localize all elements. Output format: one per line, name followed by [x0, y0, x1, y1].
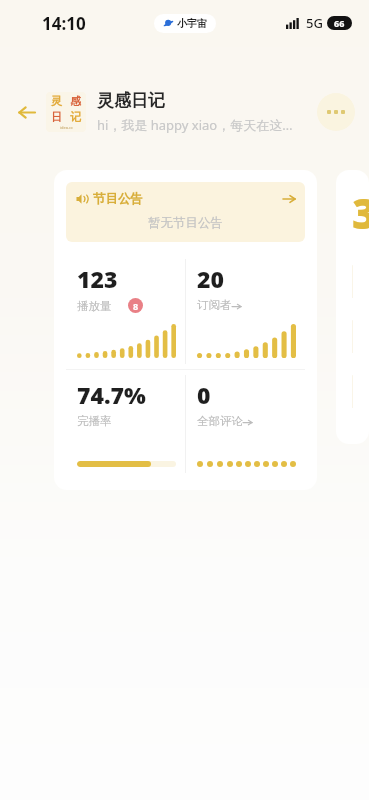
staticText: 节目公告: [93, 191, 143, 207]
staticText: 感: [70, 94, 81, 108]
staticText: 全部评论: [197, 414, 243, 428]
button[interactable]: 123: [66, 254, 185, 369]
staticText: 灵感日记: [97, 90, 165, 111]
staticText: 小宇宙: [177, 17, 207, 30]
button[interactable]: 节目公告: [66, 182, 305, 242]
button[interactable]: 74.7%: [66, 370, 185, 478]
staticText: 完播率: [77, 414, 112, 428]
staticText: 记: [70, 110, 81, 124]
staticText: 14:10: [42, 12, 86, 35]
staticText: hi，我是 happy xiao，每天在这…: [97, 116, 293, 134]
staticText: 123: [77, 263, 118, 294]
staticText: 5G: [306, 14, 323, 32]
staticText: 订阅者: [197, 298, 232, 312]
staticText: 暂无节目公告: [76, 215, 295, 231]
button[interactable]: 0: [186, 370, 305, 478]
button[interactable]: 20: [186, 254, 305, 369]
staticText: 灵: [51, 94, 62, 108]
staticText: idea.cc: [60, 125, 73, 130]
button[interactable]: More options: [317, 93, 355, 131]
staticText: 播放量: [77, 299, 112, 313]
staticText: 8: [133, 300, 139, 312]
staticText: 74.7%: [77, 379, 146, 410]
staticText: 0: [197, 379, 211, 410]
button[interactable]: Back: [10, 96, 42, 128]
staticText: 20: [197, 263, 224, 294]
staticText: 66: [334, 17, 345, 29]
staticText: 日: [51, 110, 62, 124]
